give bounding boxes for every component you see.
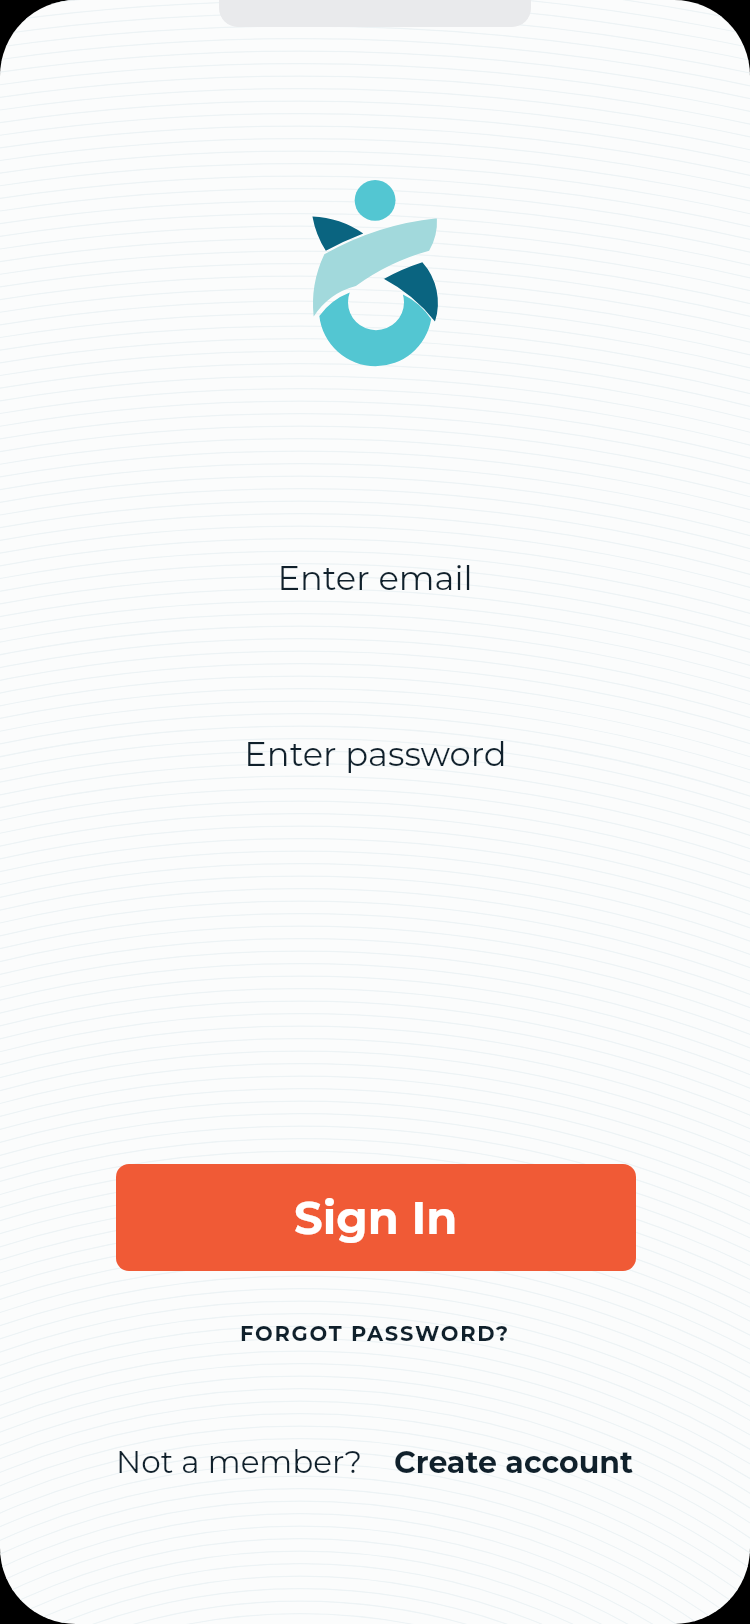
button[interactable]: Sign In (116, 1164, 636, 1271)
button[interactable]: FORGOT PASSWORD? (240, 1321, 510, 1347)
staticText: Enter password (244, 733, 507, 774)
staticText: Not a member? (116, 1443, 363, 1481)
button[interactable]: Enter email (277, 557, 473, 598)
staticText: Enter email (277, 557, 473, 598)
button[interactable]: Enter password (244, 733, 507, 774)
staticText: Create account (394, 1444, 634, 1481)
staticText: Sign In (294, 1190, 458, 1245)
button[interactable]: Create account (394, 1444, 634, 1481)
staticText: FORGOT PASSWORD? (240, 1321, 510, 1347)
